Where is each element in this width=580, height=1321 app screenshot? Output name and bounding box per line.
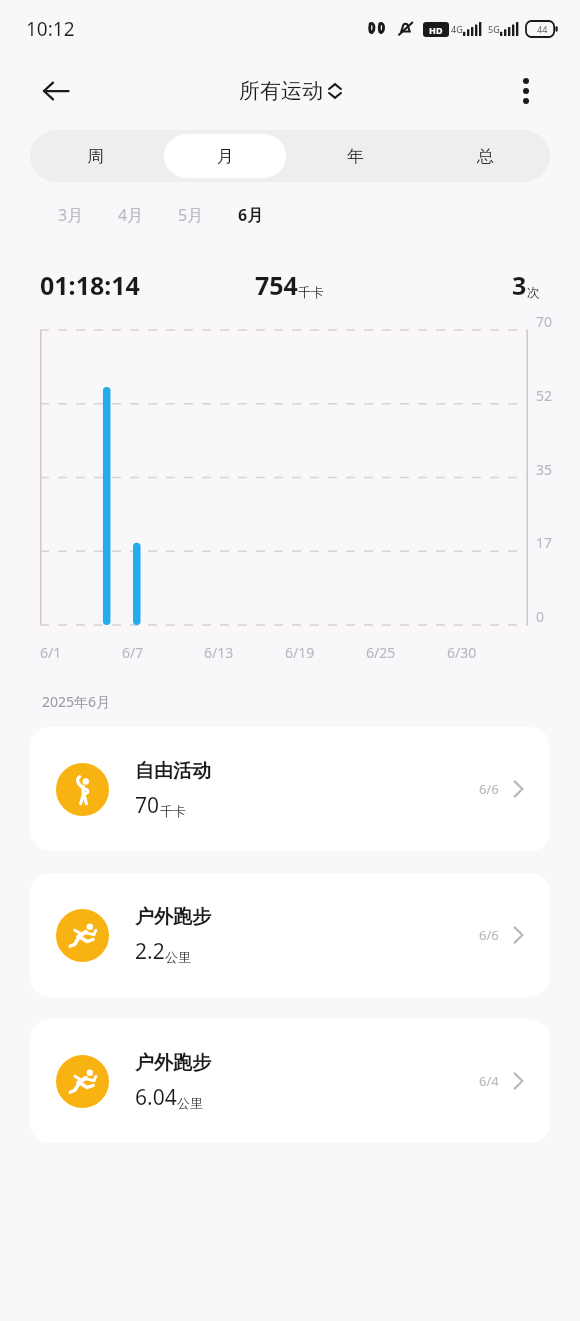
staticText: 4月 bbox=[118, 204, 144, 226]
staticText: 2.2 bbox=[135, 937, 165, 966]
button[interactable]: 6月 bbox=[238, 204, 298, 226]
button[interactable]: More options bbox=[504, 69, 548, 113]
staticText: 0 bbox=[536, 607, 545, 626]
button[interactable]: 自由活动 bbox=[30, 727, 550, 851]
staticText: 千卡 bbox=[298, 284, 324, 300]
staticText: 3 bbox=[512, 268, 527, 302]
staticText: 52 bbox=[536, 386, 553, 405]
staticText: 6/19 bbox=[285, 643, 315, 662]
staticText: 5月 bbox=[178, 204, 204, 226]
staticText: 6/6 bbox=[479, 926, 499, 944]
staticText: 70 bbox=[135, 791, 160, 820]
button[interactable]: 年 bbox=[294, 134, 416, 178]
button[interactable]: 4月 bbox=[118, 204, 178, 226]
staticText: 6/7 bbox=[122, 643, 144, 662]
button[interactable]: 所有运动 bbox=[239, 78, 342, 104]
staticText: 公里 bbox=[177, 1095, 203, 1111]
staticText: 6/13 bbox=[204, 643, 234, 662]
button[interactable]: 周 bbox=[34, 134, 156, 178]
staticText: 户外跑步 bbox=[135, 1051, 211, 1075]
staticText: 754 bbox=[255, 268, 298, 302]
button[interactable]: 月 bbox=[164, 134, 286, 178]
staticText: 4G bbox=[451, 23, 463, 35]
staticText: 次 bbox=[527, 284, 540, 300]
staticText: 6/25 bbox=[366, 643, 396, 662]
staticText: 千卡 bbox=[160, 803, 186, 819]
staticText: 17 bbox=[536, 533, 553, 552]
staticText: 3月 bbox=[58, 204, 84, 226]
staticText: HD bbox=[429, 24, 443, 36]
staticText: 35 bbox=[536, 460, 553, 479]
staticText: 44 bbox=[537, 23, 548, 35]
staticText: 6月 bbox=[238, 204, 264, 226]
staticText: 所有运动 bbox=[239, 78, 323, 104]
staticText: 01:18:14 bbox=[40, 268, 140, 302]
staticText: 月 bbox=[217, 146, 234, 167]
button[interactable]: 3月 bbox=[58, 204, 118, 226]
staticText: 年 bbox=[347, 146, 364, 167]
staticText: 周 bbox=[87, 146, 104, 167]
staticText: 6/1 bbox=[40, 643, 62, 662]
staticText: 6.04 bbox=[135, 1083, 177, 1112]
button[interactable]: 5月 bbox=[178, 204, 238, 226]
staticText: 6/30 bbox=[447, 643, 477, 662]
staticText: 6/4 bbox=[479, 1072, 499, 1090]
staticText: 6/6 bbox=[479, 780, 499, 798]
button[interactable]: 总 bbox=[424, 134, 546, 178]
button[interactable]: Back bbox=[34, 69, 78, 113]
staticText: 自由活动 bbox=[135, 759, 211, 783]
staticText: 总 bbox=[477, 146, 494, 167]
button[interactable]: 户外跑步 bbox=[30, 873, 550, 997]
staticText: 5G bbox=[488, 23, 500, 35]
staticText: 户外跑步 bbox=[135, 905, 211, 929]
staticText: 70 bbox=[536, 312, 553, 331]
button[interactable]: 户外跑步 bbox=[30, 1019, 550, 1143]
staticText: 10:12 bbox=[26, 16, 75, 42]
staticText: 2025年6月 bbox=[42, 692, 111, 711]
staticText: 公里 bbox=[165, 949, 191, 965]
